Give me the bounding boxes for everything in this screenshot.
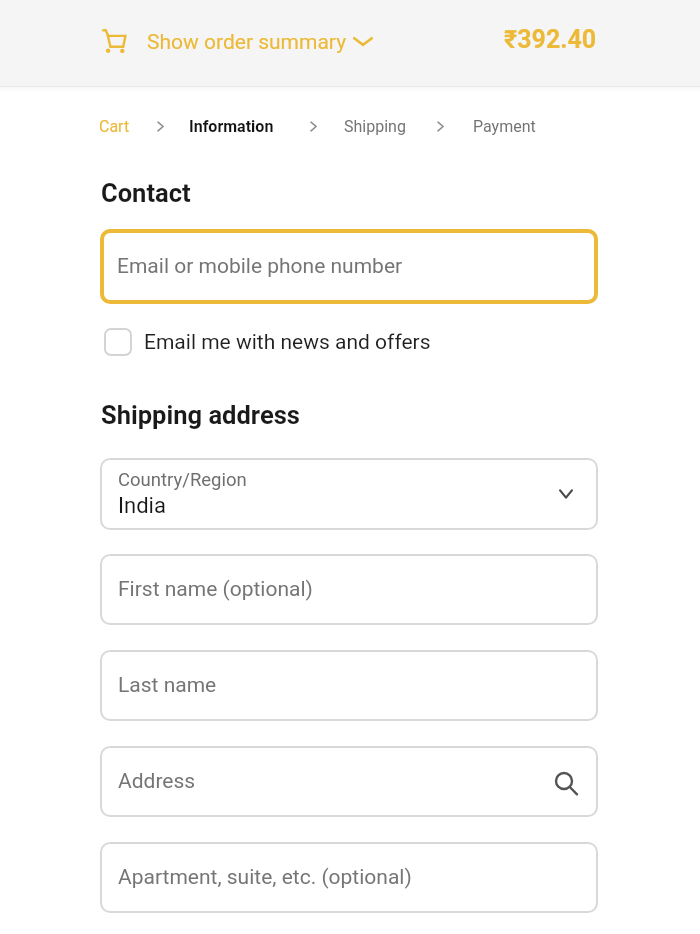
staticText: First name (optional) xyxy=(118,577,313,602)
button[interactable]: Payment xyxy=(473,117,536,136)
staticText: ₹392.40 xyxy=(504,25,597,54)
button[interactable]: Shipping xyxy=(344,117,406,136)
staticText: Shipping address xyxy=(101,400,300,430)
button[interactable]: First name (optional) xyxy=(100,554,598,625)
staticText: Address xyxy=(118,769,196,794)
staticText: Information xyxy=(189,117,274,136)
staticText: Contact xyxy=(101,178,191,208)
button[interactable]: Country/Region xyxy=(100,458,598,530)
button[interactable]: Apartment, suite, etc. (optional) xyxy=(100,842,598,913)
staticText: Email me with news and offers xyxy=(144,330,431,355)
button[interactable]: Email or mobile phone number xyxy=(100,229,598,304)
button[interactable]: Last name xyxy=(100,650,598,721)
button[interactable]: Show order summary xyxy=(101,26,373,58)
button[interactable]: Cart xyxy=(99,117,130,136)
staticText: India xyxy=(118,493,166,519)
staticText: Show order summary xyxy=(147,30,347,55)
staticText: Email or mobile phone number xyxy=(117,254,403,279)
staticText: Country/Region xyxy=(118,469,247,491)
staticText: Apartment, suite, etc. (optional) xyxy=(118,865,412,890)
button[interactable]: Address xyxy=(100,746,598,817)
staticText: Last name xyxy=(118,673,217,698)
button[interactable]: Email me with news and offers xyxy=(104,328,431,356)
